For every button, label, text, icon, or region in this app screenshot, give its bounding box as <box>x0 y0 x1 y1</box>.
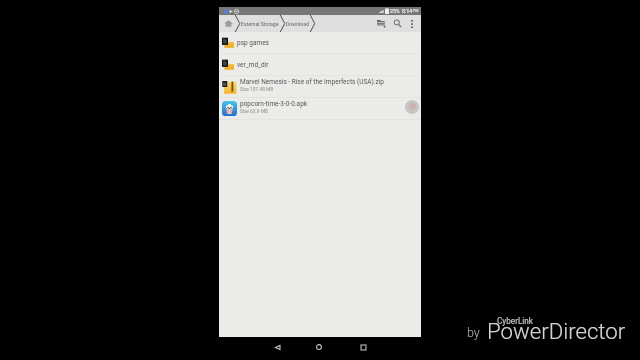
staticText: popcorn-time-3-0-0.apk <box>240 100 308 108</box>
staticText: Size 107.48 MB <box>240 87 274 93</box>
staticText: Marvel Nemesis - Rise of the Imperfects … <box>240 78 385 86</box>
button[interactable]: ver_md_dir <box>219 54 421 75</box>
button[interactable]: psp games <box>219 32 421 53</box>
staticText: PowerDirector <box>487 318 626 344</box>
button[interactable]: Recent apps <box>356 340 370 354</box>
button[interactable]: Home <box>222 15 235 32</box>
staticText: by <box>467 325 480 340</box>
staticText: 25% <box>390 8 400 14</box>
staticText: CyberLink <box>497 316 533 326</box>
staticText: psp games <box>237 39 269 47</box>
staticText: ver_md_dir <box>237 61 269 69</box>
button[interactable]: More options <box>405 15 419 32</box>
button[interactable]: Sort <box>373 15 389 32</box>
button[interactable]: External Storage <box>240 21 280 27</box>
button[interactable]: Back <box>270 340 284 354</box>
staticText: Size 63.9 MB <box>240 109 268 115</box>
button[interactable]: popcorn-time-3-0-0.apk <box>219 98 421 119</box>
button[interactable]: Search <box>389 15 405 32</box>
button[interactable]: Download <box>285 21 310 27</box>
button[interactable]: Home <box>312 340 326 354</box>
staticText: 8:14 <box>402 8 413 14</box>
button[interactable]: Marvel Nemesis - Rise of the Imperfects … <box>219 76 421 97</box>
staticText: PM <box>413 9 419 13</box>
